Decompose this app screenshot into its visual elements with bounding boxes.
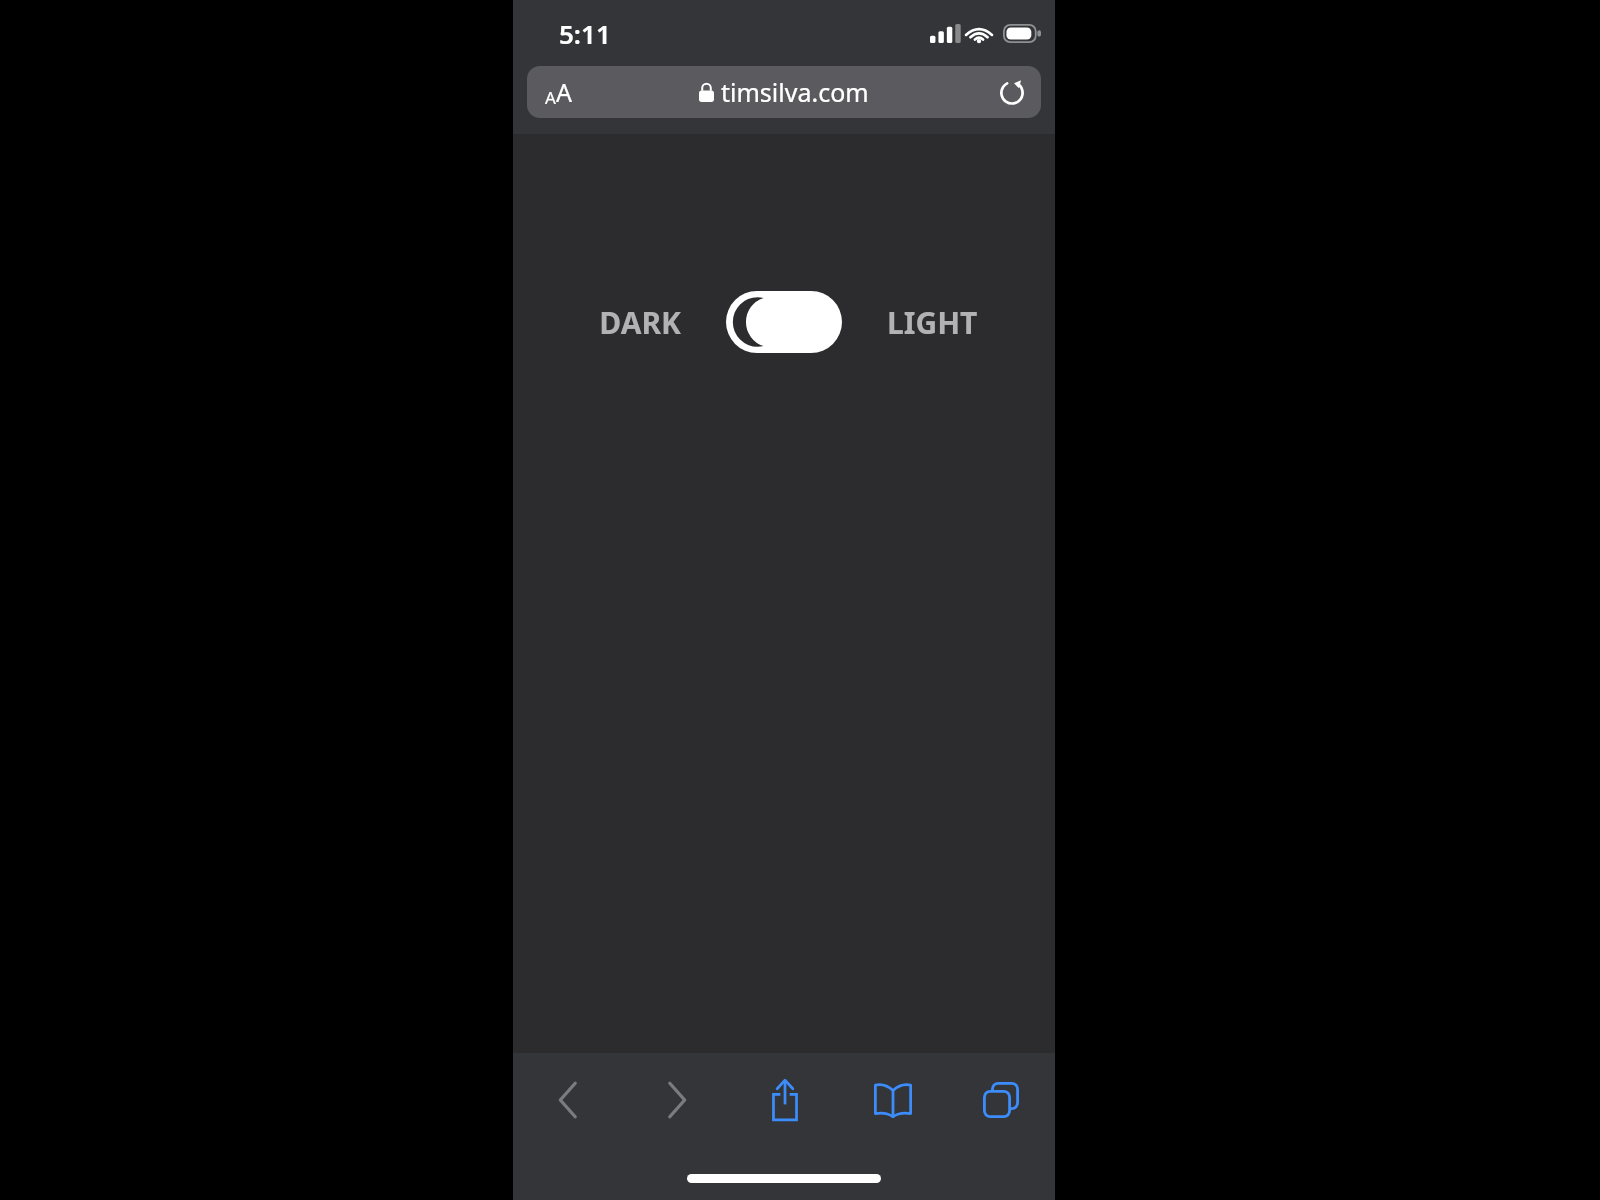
button[interactable]: Text size options bbox=[539, 69, 578, 115]
staticText: DARK bbox=[599, 302, 681, 343]
button[interactable]: Share bbox=[731, 1065, 839, 1135]
button[interactable]: Reload page bbox=[993, 73, 1031, 111]
button[interactable]: Text size options bbox=[527, 66, 1041, 118]
staticText: timsilva.com bbox=[721, 75, 869, 109]
staticText: 5:11 bbox=[559, 16, 611, 51]
button[interactable]: Back bbox=[513, 1065, 622, 1135]
staticText: A bbox=[545, 86, 556, 109]
staticText: LIGHT bbox=[887, 302, 978, 343]
button[interactable]: Toggle dark and light theme bbox=[726, 291, 842, 353]
button[interactable]: Tabs bbox=[947, 1065, 1055, 1135]
button[interactable]: Forward bbox=[622, 1065, 731, 1135]
staticText: A bbox=[556, 75, 572, 109]
button[interactable]: Bookmarks bbox=[839, 1065, 947, 1135]
